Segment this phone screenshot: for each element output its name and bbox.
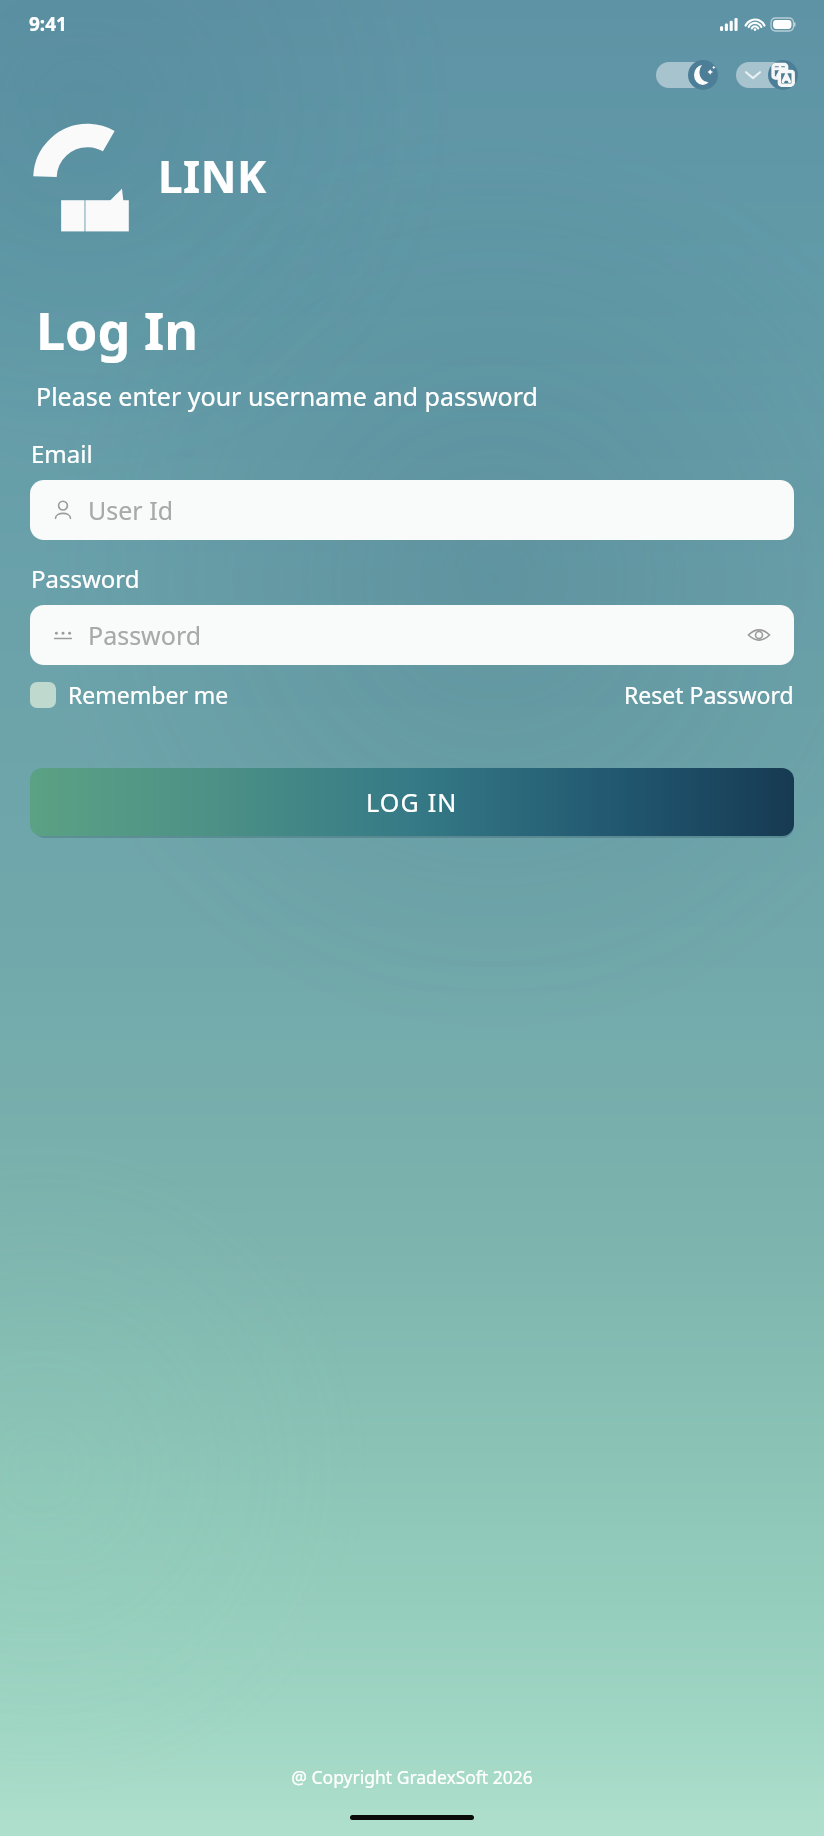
button[interactable]: Change language bbox=[736, 60, 798, 90]
button[interactable]: Toggle dark mode bbox=[656, 60, 718, 90]
button[interactable]: Password bbox=[30, 605, 794, 665]
staticText: Email bbox=[31, 437, 93, 470]
staticText: LOG IN bbox=[366, 785, 458, 819]
button[interactable]: LOG IN bbox=[30, 768, 794, 836]
staticText: 9:41 bbox=[29, 11, 67, 37]
staticText: Password bbox=[88, 618, 202, 652]
button[interactable]: Reset Password bbox=[624, 679, 794, 710]
staticText: LINK bbox=[158, 146, 267, 206]
button[interactable]: Show password bbox=[742, 618, 776, 652]
staticText: Remember me bbox=[68, 679, 229, 710]
staticText: Password bbox=[31, 562, 140, 595]
staticText: User Id bbox=[88, 493, 174, 527]
button[interactable]: User Id bbox=[30, 480, 794, 540]
button[interactable]: Remember me bbox=[30, 679, 229, 710]
staticText: Log In bbox=[36, 294, 198, 365]
staticText: @ Copyright GradexSoft 2026 bbox=[0, 1765, 824, 1789]
staticText: Reset Password bbox=[624, 679, 794, 710]
staticText: Please enter your username and password bbox=[36, 379, 538, 413]
